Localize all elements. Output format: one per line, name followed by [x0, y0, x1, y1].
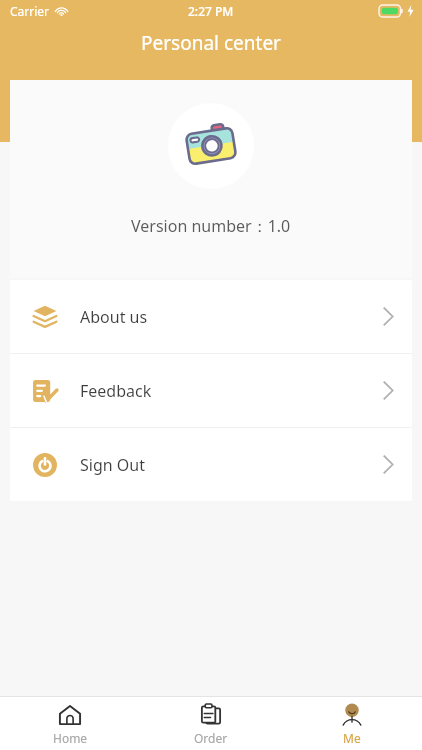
- button[interactable]: Order: [140, 697, 281, 750]
- staticText: Me: [343, 730, 361, 746]
- staticText: Version number：1.0: [131, 215, 291, 237]
- other: Order: [199, 703, 223, 727]
- staticText: About us: [80, 306, 148, 328]
- staticText: Personal center: [0, 30, 422, 56]
- button[interactable]: Feedback: [10, 354, 412, 427]
- staticText: Home: [53, 730, 88, 746]
- button[interactable]: About us: [10, 280, 412, 353]
- staticText: Carrier: [10, 3, 50, 19]
- staticText: 2:27 PM: [188, 3, 234, 19]
- staticText: Order: [194, 730, 228, 746]
- button[interactable]: Home: [0, 697, 140, 750]
- staticText: Sign Out: [80, 454, 145, 476]
- other: Home: [58, 703, 82, 727]
- button[interactable]: Me: [281, 697, 422, 750]
- other: Me: [340, 703, 364, 727]
- button[interactable]: Sign Out: [10, 428, 412, 501]
- staticText: Feedback: [80, 380, 152, 402]
